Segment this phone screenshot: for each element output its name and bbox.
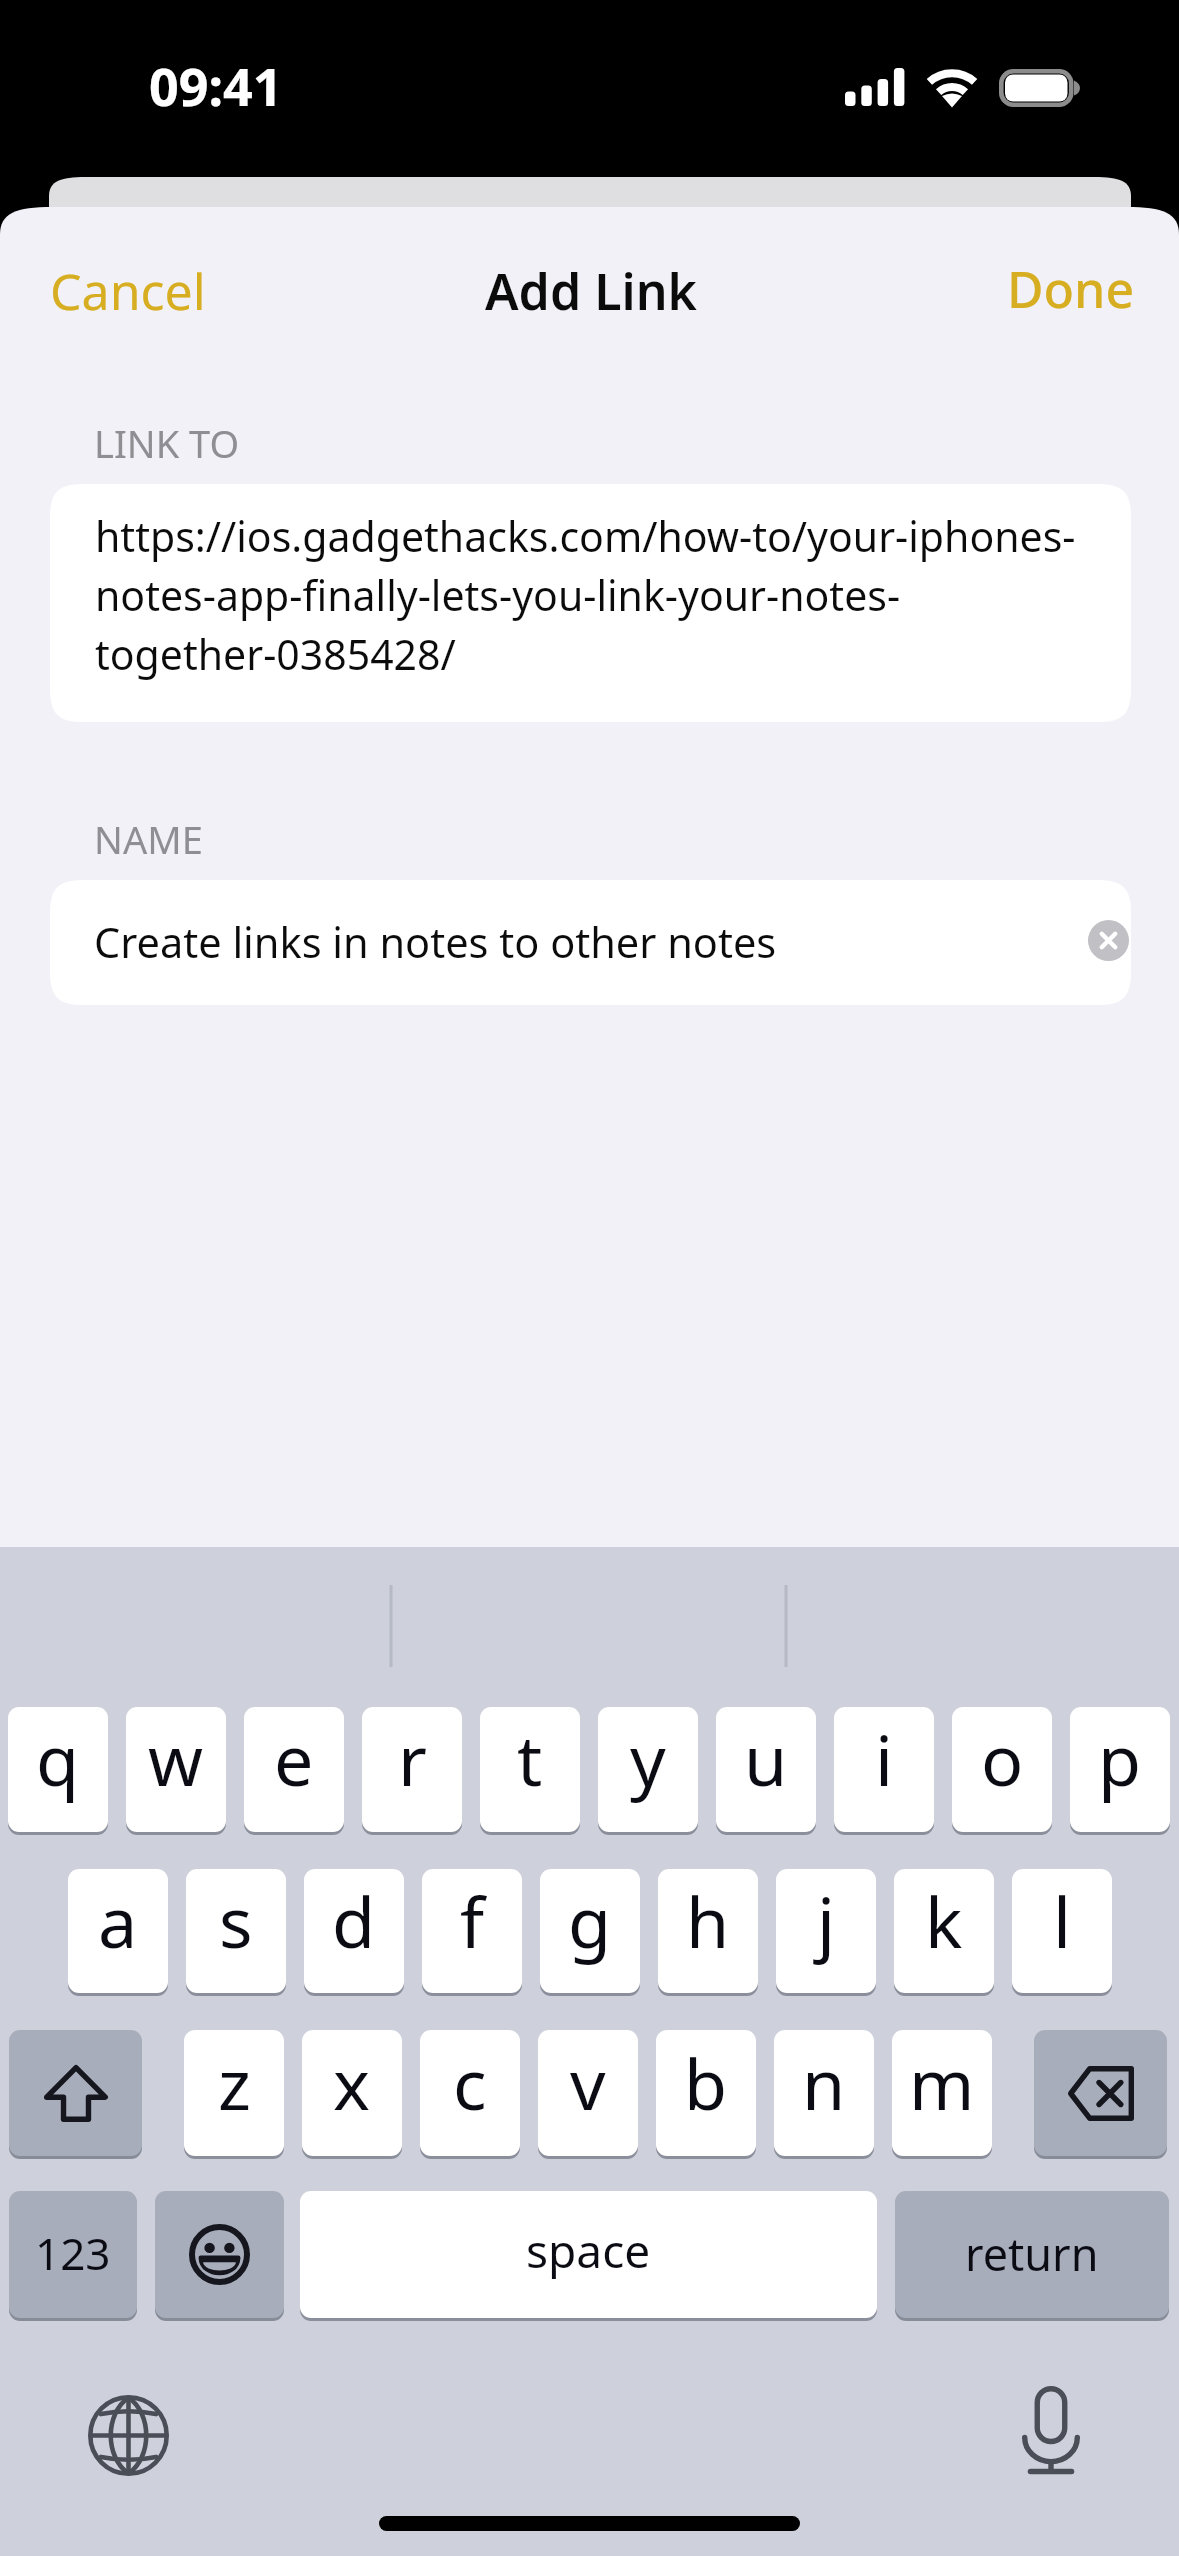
staticText: Done: [1007, 255, 1135, 323]
staticText: q: [36, 1711, 80, 1806]
button[interactable]: m: [892, 2030, 992, 2156]
button[interactable]: o: [952, 1707, 1052, 1832]
button[interactable]: Done: [977, 233, 1165, 345]
staticText: Create links in notes to other notes: [94, 914, 777, 971]
staticText: Cancel: [50, 257, 206, 325]
button[interactable]: c: [420, 2030, 520, 2156]
button[interactable]: Delete: [1034, 2030, 1167, 2156]
button[interactable]: q: [8, 1707, 108, 1832]
staticText: space: [526, 2219, 651, 2282]
staticText: a: [98, 1873, 138, 1968]
button[interactable]: s: [186, 1869, 286, 1993]
button[interactable]: Dictation: [1001, 2380, 1101, 2480]
staticText: d: [332, 1873, 376, 1968]
staticText: l: [1053, 1873, 1072, 1968]
staticText: n: [802, 2035, 846, 2130]
button[interactable]: n: [774, 2030, 874, 2156]
button[interactable]: r: [362, 1707, 462, 1832]
staticText: j: [817, 1873, 836, 1968]
staticText: LINK TO: [94, 417, 240, 469]
button[interactable]: i: [834, 1707, 934, 1832]
staticText: t: [517, 1711, 543, 1806]
button[interactable]: p: [1070, 1707, 1170, 1832]
button[interactable]: Emoji keyboard: [155, 2191, 284, 2318]
staticText: m: [909, 2035, 975, 2130]
staticText: return: [965, 2223, 1099, 2284]
staticText: f: [460, 1873, 485, 1968]
staticText: z: [218, 2035, 251, 2130]
button[interactable]: k: [894, 1869, 994, 1993]
staticText: s: [219, 1873, 253, 1968]
staticText: v: [570, 2035, 606, 2130]
button[interactable]: z: [184, 2030, 284, 2156]
button[interactable]: return: [895, 2191, 1169, 2318]
button[interactable]: d: [304, 1869, 404, 1993]
staticText: c: [453, 2035, 487, 2130]
button[interactable]: Create links in notes to other notes: [50, 880, 1131, 1005]
button[interactable]: f: [422, 1869, 522, 1993]
button[interactable]: b: [656, 2030, 756, 2156]
staticText: h: [686, 1873, 730, 1968]
button[interactable]: v: [538, 2030, 638, 2156]
staticText: w: [148, 1711, 204, 1806]
staticText: x: [333, 2035, 371, 2130]
button[interactable]: https://ios.gadgethacks.com/how-to/your-…: [50, 484, 1131, 722]
button[interactable]: Cancel: [20, 235, 236, 347]
button[interactable]: u: [716, 1707, 816, 1832]
button[interactable]: Clear text: [1088, 920, 1129, 961]
staticText: y: [630, 1711, 666, 1806]
button[interactable]: g: [540, 1869, 640, 1993]
staticText: o: [981, 1711, 1024, 1806]
staticText: r: [398, 1711, 427, 1806]
staticText: 123: [35, 2223, 111, 2283]
button[interactable]: y: [598, 1707, 698, 1832]
button[interactable]: a: [68, 1869, 168, 1993]
button[interactable]: t: [480, 1707, 580, 1832]
button[interactable]: 123: [9, 2191, 137, 2318]
staticText: 09:41: [149, 50, 283, 121]
staticText: e: [274, 1711, 314, 1806]
button[interactable]: space: [300, 2191, 877, 2318]
staticText: Add Link: [485, 257, 697, 325]
button[interactable]: w: [126, 1707, 226, 1832]
staticText: https://ios.gadgethacks.com/how-to/your-…: [95, 508, 1090, 682]
button[interactable]: h: [658, 1869, 758, 1993]
button[interactable]: Shift: [9, 2030, 142, 2156]
staticText: p: [1098, 1711, 1142, 1806]
button[interactable]: Change keyboard language: [78, 2385, 178, 2485]
button[interactable]: x: [302, 2030, 402, 2156]
staticText: b: [684, 2035, 728, 2130]
staticText: NAME: [94, 813, 203, 865]
button[interactable]: j: [776, 1869, 876, 1993]
button[interactable]: e: [244, 1707, 344, 1832]
staticText: i: [875, 1711, 894, 1806]
staticText: u: [744, 1711, 788, 1806]
button[interactable]: l: [1012, 1869, 1112, 1993]
staticText: k: [925, 1873, 963, 1968]
staticText: g: [568, 1873, 612, 1968]
